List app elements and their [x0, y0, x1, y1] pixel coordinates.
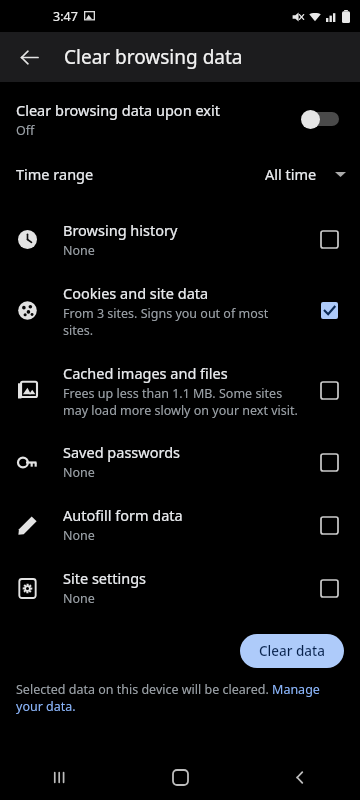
button[interactable]: Unchecked	[312, 222, 346, 256]
button[interactable]: Checked	[312, 293, 346, 327]
staticText: Cookies and site data	[63, 283, 209, 303]
button[interactable]: Autofill form data	[0, 493, 360, 556]
button[interactable]: Back	[10, 38, 48, 76]
staticText: 3:47	[53, 8, 78, 25]
button[interactable]: Unchecked	[312, 373, 346, 407]
staticText: Browsing history	[63, 220, 178, 240]
button[interactable]: Unchecked	[312, 571, 346, 605]
button[interactable]: Home	[120, 754, 240, 800]
staticText: Time range	[16, 164, 94, 184]
staticText: Site settings	[63, 568, 147, 588]
staticText: Cached images and files	[63, 363, 228, 383]
button[interactable]: Unchecked	[312, 508, 346, 542]
staticText: None	[63, 464, 95, 481]
button[interactable]: Time range	[0, 148, 360, 200]
button[interactable]: Recents	[0, 754, 120, 800]
staticText: Selected data on this device will be cle…	[16, 681, 344, 715]
staticText: Autofill form data	[63, 505, 183, 525]
staticText: Clear browsing data	[64, 44, 243, 70]
staticText: None	[63, 590, 95, 607]
button[interactable]: Clear browsing data upon exit	[0, 90, 360, 148]
staticText: Clear data	[259, 642, 325, 660]
button[interactable]: Clear data	[240, 634, 344, 668]
staticText: Saved passwords	[63, 442, 180, 462]
button[interactable]: Cached images and files	[0, 350, 360, 430]
staticText: Clear browsing data upon exit	[16, 100, 220, 120]
button[interactable]: Saved passwords	[0, 430, 360, 493]
staticText: All time	[265, 164, 317, 184]
staticText: None	[63, 242, 95, 259]
staticText: Frees up less than 1.1 MB. Some sites ma…	[63, 385, 298, 418]
staticText: None	[63, 527, 95, 544]
staticText: Off	[16, 122, 35, 139]
button[interactable]: Browsing history	[0, 208, 360, 270]
button[interactable]: Site settings	[0, 556, 360, 619]
staticText: From 3 sites. Signs you out of most site…	[63, 305, 269, 338]
button[interactable]: Cookies and site data	[0, 270, 360, 350]
button[interactable]: Back	[240, 754, 360, 800]
button[interactable]: Unchecked	[312, 445, 346, 479]
